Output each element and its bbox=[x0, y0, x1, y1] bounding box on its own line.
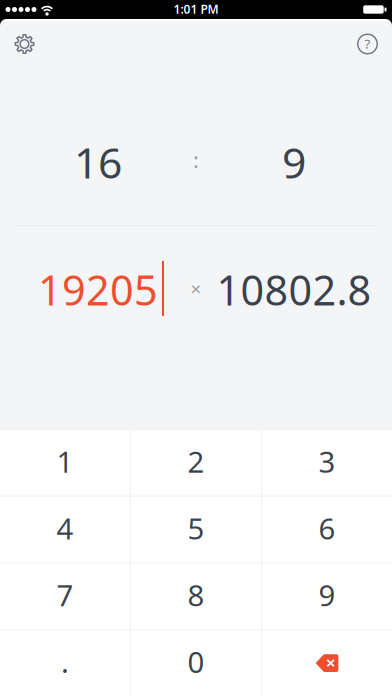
staticText: × bbox=[190, 276, 201, 301]
button[interactable]: 6 bbox=[262, 497, 392, 563]
staticText: 1 bbox=[56, 442, 73, 481]
staticText: : bbox=[193, 146, 199, 174]
staticText: ? bbox=[364, 35, 370, 52]
button[interactable]: Settings bbox=[0, 19, 49, 63]
button[interactable]: 7 bbox=[0, 563, 130, 629]
button[interactable]: Help bbox=[343, 19, 392, 63]
staticText: 4 bbox=[56, 509, 73, 548]
staticText: 9 bbox=[318, 575, 335, 614]
button[interactable]: Aspect height 9 bbox=[196, 63, 392, 225]
staticText: 9 bbox=[282, 134, 306, 190]
button[interactable]: 0 bbox=[131, 630, 261, 696]
staticText: . bbox=[61, 642, 69, 681]
staticText: 16 bbox=[74, 134, 122, 190]
staticText: 7 bbox=[56, 575, 73, 614]
button[interactable]: 1 bbox=[0, 430, 130, 496]
staticText: 8 bbox=[187, 575, 204, 614]
button[interactable]: 2 bbox=[131, 430, 261, 496]
staticText: 2 bbox=[187, 442, 204, 481]
button[interactable]: 9 bbox=[262, 563, 392, 629]
staticText: 19205 bbox=[38, 262, 158, 317]
staticText: 5 bbox=[187, 509, 204, 548]
staticText: 10802.8 bbox=[216, 262, 371, 317]
button[interactable]: 5 bbox=[131, 497, 261, 563]
button[interactable]: 8 bbox=[131, 563, 261, 629]
button[interactable]: Height 10802.8 bbox=[196, 226, 392, 429]
button[interactable]: Delete bbox=[262, 630, 392, 696]
staticText: 6 bbox=[318, 509, 335, 548]
staticText: 0 bbox=[187, 642, 204, 681]
staticText: 3 bbox=[318, 442, 335, 481]
button[interactable]: 4 bbox=[0, 497, 130, 563]
button[interactable]: . bbox=[0, 630, 130, 696]
button[interactable]: Width 19205 bbox=[0, 226, 196, 429]
staticText: 1:01 PM bbox=[173, 1, 218, 17]
button[interactable]: 3 bbox=[262, 430, 392, 496]
button[interactable]: Aspect width 16 bbox=[0, 63, 196, 225]
